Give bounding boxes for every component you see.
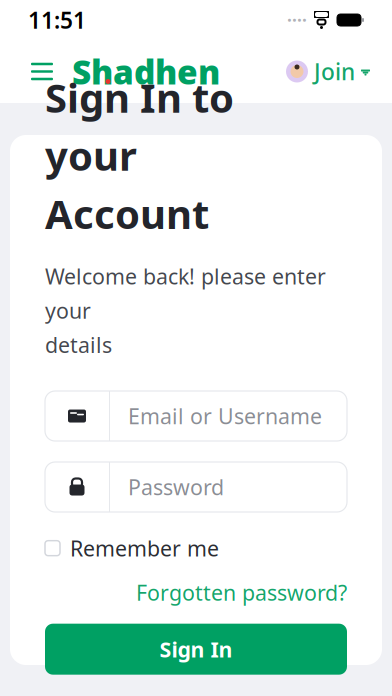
- staticText: ····: [287, 8, 307, 31]
- button[interactable]: Forgotten password?: [136, 575, 347, 610]
- button[interactable]: Shadhen: [62, 49, 220, 94]
- staticText: Password: [128, 473, 224, 501]
- staticText: Email or Username: [128, 402, 322, 430]
- button[interactable]: Join: [286, 56, 370, 86]
- staticText: Shadhen: [72, 49, 220, 94]
- button[interactable]: Sign In: [45, 624, 347, 675]
- staticText: 11:51: [28, 5, 86, 35]
- button[interactable]: Menu: [22, 51, 62, 91]
- button[interactable]: Remember me: [45, 530, 347, 566]
- staticText: Remember me: [70, 534, 219, 562]
- staticText: Welcome back! please enter your details: [45, 262, 326, 359]
- staticText: Sign In: [159, 635, 232, 663]
- staticText: Join: [314, 56, 355, 86]
- staticText: Sign In to your Account: [45, 71, 234, 240]
- staticText: Forgotten password?: [136, 578, 347, 607]
